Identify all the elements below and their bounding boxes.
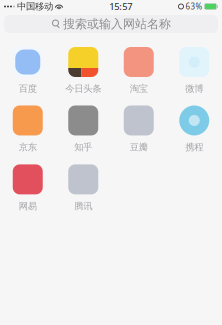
button[interactable]: 百度	[0, 47, 55, 94]
staticText: 百度	[19, 83, 37, 94]
button[interactable]: 网易	[0, 164, 55, 212]
button[interactable]: 腾讯	[55, 164, 111, 212]
staticText: 微博	[185, 83, 203, 94]
button[interactable]: 淘宝	[111, 47, 166, 94]
staticText: 腾讯	[74, 200, 92, 212]
staticText: 搜索或输入网站名称	[63, 17, 171, 31]
staticText: 京东	[19, 141, 37, 153]
staticText: 携程	[185, 141, 203, 153]
staticText: 豆瓣	[130, 141, 148, 153]
button[interactable]: 知乎	[55, 105, 111, 153]
staticText: 淘宝	[130, 83, 148, 94]
staticText: 知乎	[74, 141, 92, 153]
button[interactable]: 京东	[0, 105, 55, 153]
button[interactable]: 携程	[166, 105, 222, 153]
staticText: 中国移动	[17, 1, 53, 12]
button[interactable]: 豆瓣	[111, 105, 166, 153]
staticText: 63%	[185, 1, 202, 12]
button[interactable]: 微博	[166, 47, 222, 94]
button[interactable]: 今日头条	[55, 47, 111, 94]
button[interactable]: 搜索或输入网站名称	[0, 15, 222, 33]
staticText: 网易	[19, 200, 37, 212]
staticText: 15:57	[109, 0, 132, 13]
staticText: 今日头条	[65, 83, 101, 94]
